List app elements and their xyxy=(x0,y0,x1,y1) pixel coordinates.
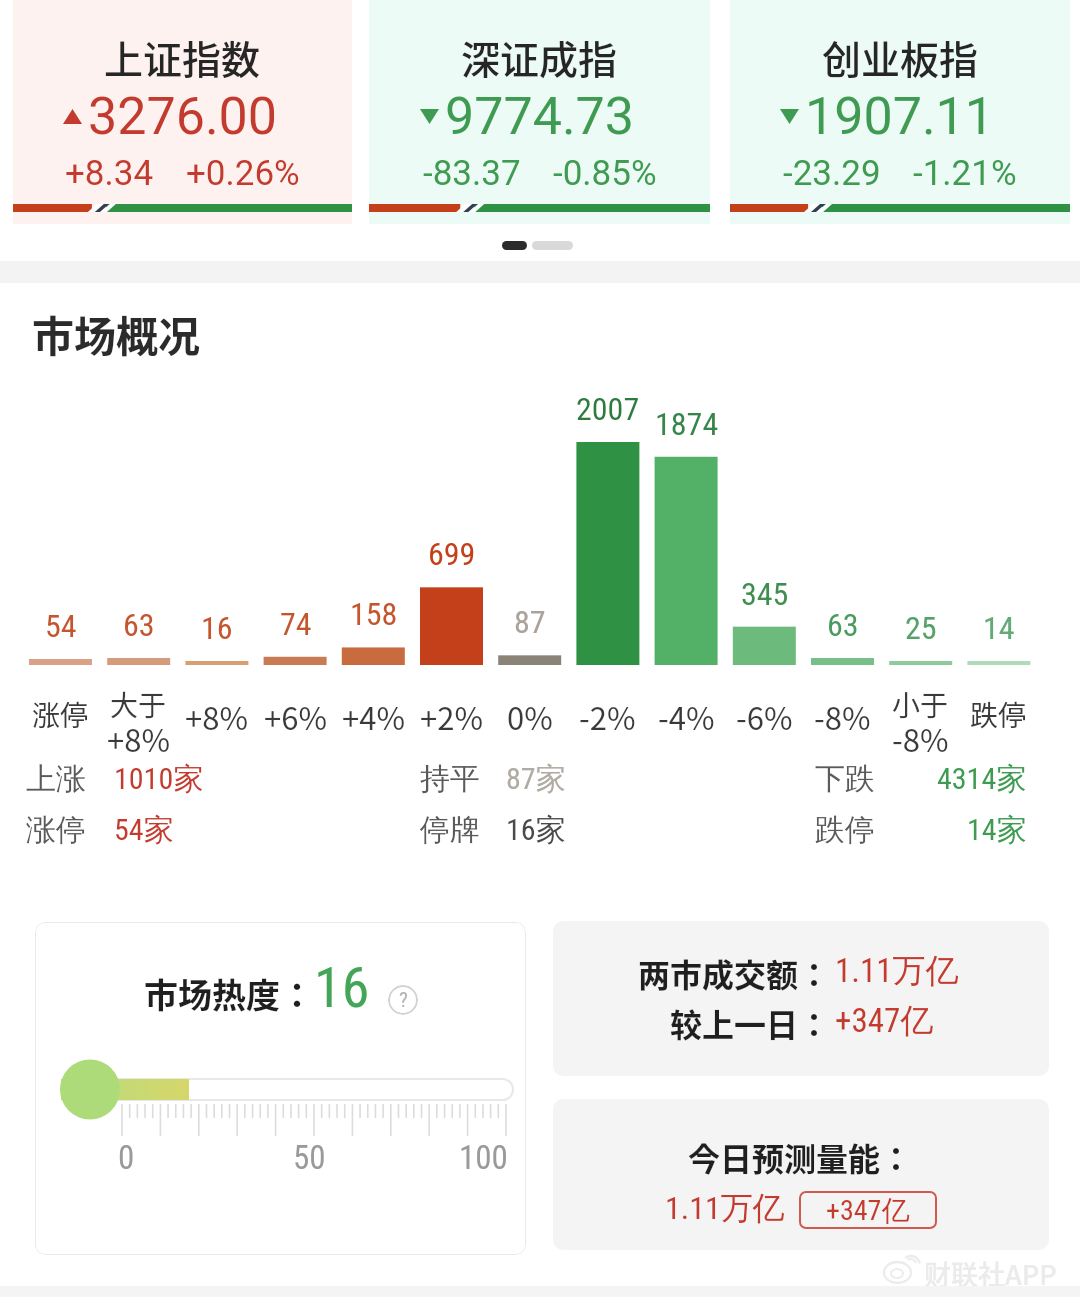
staticText: 3276.00 xyxy=(88,86,278,147)
staticText: -83.37 xyxy=(423,153,521,194)
staticText: 跌停 xyxy=(970,694,1027,735)
staticText: +347亿 xyxy=(826,1193,910,1228)
staticText: 今日预测量能： xyxy=(688,1134,913,1180)
staticText: +8% xyxy=(185,694,248,739)
button[interactable]: 两市成交额： xyxy=(553,921,1049,1076)
staticText: 较上一日： xyxy=(670,1000,831,1046)
button[interactable]: 今日预测量能： xyxy=(553,1099,1049,1250)
staticText: +347亿 xyxy=(835,1000,934,1042)
staticText: 100 xyxy=(459,1138,508,1177)
staticText: 14家 xyxy=(967,811,1027,849)
staticText: 两市成交额： xyxy=(638,950,831,996)
staticText: 0% xyxy=(507,694,553,739)
staticText: -2% xyxy=(579,694,636,739)
button[interactable]: 创业板指 xyxy=(730,0,1070,224)
staticText: 停牌 xyxy=(420,811,480,849)
staticText: +6% xyxy=(264,694,327,739)
staticText: 涨停 xyxy=(32,694,89,735)
staticText: 市场热度： xyxy=(144,969,314,1018)
button[interactable]: 上涨 xyxy=(26,760,244,802)
button[interactable]: 持平 xyxy=(420,760,636,802)
staticText: 25 xyxy=(905,609,937,647)
staticText: 16 xyxy=(201,609,233,647)
staticText: 1907.11 xyxy=(805,86,995,147)
staticText: -8% xyxy=(892,716,949,761)
staticText: 50 xyxy=(293,1138,326,1177)
staticText: 63 xyxy=(123,606,155,644)
button[interactable]: 第一页 xyxy=(502,241,527,250)
staticText: 14 xyxy=(983,609,1015,647)
staticText: -8% xyxy=(814,694,871,739)
button[interactable]: 跌停 xyxy=(815,811,1027,853)
staticText: 持平 xyxy=(420,760,480,798)
staticText: 54 xyxy=(45,607,77,645)
button[interactable]: +347亿 xyxy=(799,1191,937,1229)
staticText: +8.34 xyxy=(65,153,154,194)
staticText: 87家 xyxy=(506,760,566,798)
staticText: 2007 xyxy=(576,390,640,428)
staticText: 1010家 xyxy=(114,760,204,798)
staticText: 54家 xyxy=(114,811,174,849)
staticText: -0.85% xyxy=(553,153,657,194)
staticText: 16 xyxy=(314,955,370,1021)
staticText: 9774.73 xyxy=(445,86,635,147)
staticText: 0 xyxy=(118,1138,135,1177)
staticText: 财联社APP xyxy=(924,1254,1057,1293)
staticText: 上证指数 xyxy=(104,29,261,85)
button[interactable]: 停牌 xyxy=(420,811,636,853)
staticText: 深证成指 xyxy=(461,29,618,85)
staticText: 1874 xyxy=(655,405,719,443)
staticText: -4% xyxy=(658,694,715,739)
staticText: 跌停 xyxy=(815,811,875,849)
staticText: 4314家 xyxy=(937,760,1027,798)
button[interactable]: 涨停 xyxy=(26,811,244,853)
staticText: 74 xyxy=(280,605,312,643)
staticText: 158 xyxy=(350,595,398,633)
staticText: 大于 xyxy=(110,684,167,725)
staticText: 345 xyxy=(741,575,789,613)
button[interactable]: 第二页 xyxy=(532,241,573,250)
staticText: -6% xyxy=(736,694,793,739)
staticText: -1.21% xyxy=(913,153,1017,194)
staticText: 699 xyxy=(428,535,476,573)
staticText: 涨停 xyxy=(26,811,86,849)
staticText: -23.29 xyxy=(783,153,881,194)
staticText: 创业板指 xyxy=(822,29,979,85)
staticText: ? xyxy=(399,988,408,1013)
staticText: 16家 xyxy=(506,811,566,849)
staticText: 1.11万亿 xyxy=(835,950,959,992)
staticText: 下跌 xyxy=(815,760,875,798)
staticText: 63 xyxy=(827,606,859,644)
staticText: 87 xyxy=(514,603,546,641)
staticText: +0.26% xyxy=(186,153,300,194)
button[interactable]: 市场热度说明 xyxy=(388,985,418,1015)
staticText: +8% xyxy=(107,716,170,761)
staticText: 上涨 xyxy=(26,760,86,798)
button[interactable]: 上证指数 xyxy=(13,0,352,224)
button[interactable]: 市场热度： xyxy=(35,922,526,1255)
staticText: +4% xyxy=(342,694,405,739)
button[interactable]: 下跌 xyxy=(815,760,1027,802)
staticText: 市场概况 xyxy=(32,303,201,364)
staticText: 小于 xyxy=(892,684,949,725)
staticText: 1.11万亿 xyxy=(665,1188,785,1228)
button[interactable]: 深证成指 xyxy=(369,0,710,224)
staticText: +2% xyxy=(420,694,483,739)
